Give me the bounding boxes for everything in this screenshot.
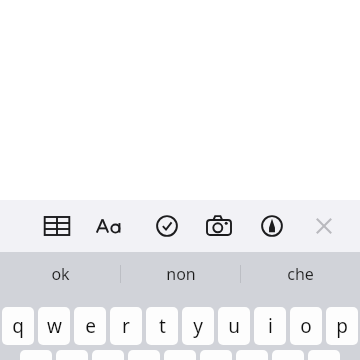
button[interactable] xyxy=(56,350,88,360)
button[interactable]: Table xyxy=(33,202,81,250)
button[interactable] xyxy=(128,350,160,360)
staticText: i xyxy=(268,313,273,339)
button[interactable]: i xyxy=(254,307,286,345)
button[interactable]: Camera xyxy=(195,202,243,250)
button[interactable]: u xyxy=(218,307,250,345)
button[interactable]: non xyxy=(121,252,240,295)
button[interactable]: che xyxy=(241,252,360,295)
button[interactable]: e xyxy=(74,307,106,345)
button[interactable]: Text format xyxy=(86,202,134,250)
staticText: ok xyxy=(51,263,70,285)
button[interactable]: r xyxy=(110,307,142,345)
button[interactable]: Checklist xyxy=(143,202,191,250)
staticText: t xyxy=(159,313,166,339)
button[interactable]: y xyxy=(182,307,214,345)
button[interactable] xyxy=(236,350,268,360)
staticText: q xyxy=(12,313,24,339)
staticText: w xyxy=(47,313,62,339)
staticText: u xyxy=(228,313,240,339)
button[interactable]: o xyxy=(290,307,322,345)
staticText: o xyxy=(300,313,312,339)
button[interactable]: t xyxy=(146,307,178,345)
staticText: non xyxy=(166,263,196,285)
button[interactable]: w xyxy=(38,307,70,345)
staticText: p xyxy=(336,313,348,339)
button[interactable] xyxy=(164,350,196,360)
button[interactable]: Markup xyxy=(248,202,296,250)
staticText: e xyxy=(85,313,96,339)
button[interactable]: ok xyxy=(0,252,120,295)
button[interactable]: q xyxy=(2,307,34,345)
staticText: y xyxy=(193,313,203,339)
button[interactable]: p xyxy=(326,307,358,345)
button[interactable] xyxy=(92,350,124,360)
button[interactable]: Close xyxy=(300,202,348,250)
button[interactable] xyxy=(308,350,340,360)
button[interactable] xyxy=(200,350,232,360)
staticText: r xyxy=(122,313,130,339)
button[interactable] xyxy=(272,350,304,360)
staticText: che xyxy=(287,263,314,285)
button[interactable] xyxy=(20,350,52,360)
